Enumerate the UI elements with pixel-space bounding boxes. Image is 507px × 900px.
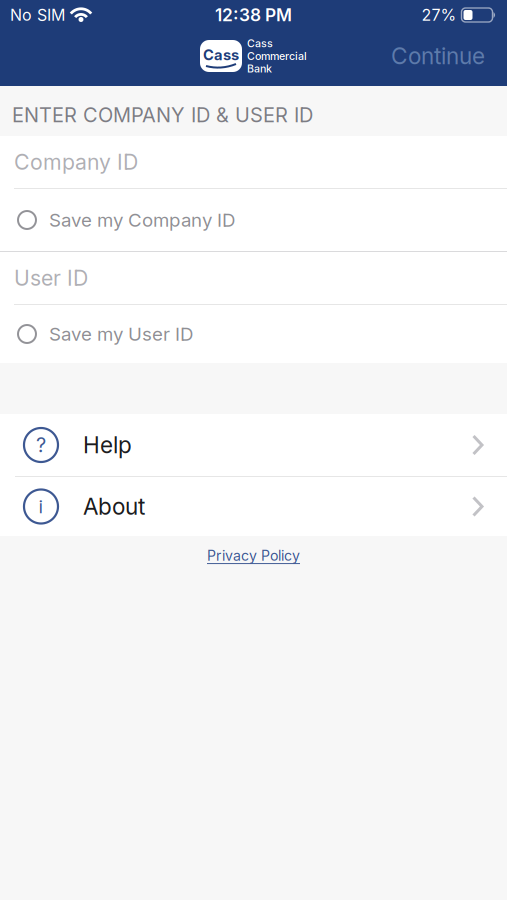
staticText: ENTER COMPANY ID & USER ID <box>12 103 313 127</box>
button[interactable]: Save my Company ID <box>0 189 507 251</box>
staticText: Company ID <box>14 149 138 175</box>
staticText: Continue <box>391 43 485 69</box>
button[interactable]: Company ID text field <box>0 136 507 188</box>
staticText: Cass <box>203 46 239 64</box>
staticText: Help <box>83 432 132 458</box>
staticText: Commercial <box>247 50 307 62</box>
staticText: About <box>83 493 145 520</box>
button[interactable]: i <box>0 477 507 536</box>
staticText: Bank <box>247 62 272 75</box>
staticText: No SIM <box>10 6 65 24</box>
button[interactable]: Continue <box>391 43 507 69</box>
button[interactable]: Privacy Policy <box>207 536 300 564</box>
staticText: i <box>38 495 43 517</box>
staticText: Cass <box>247 37 273 50</box>
staticText: Privacy Policy <box>207 547 300 564</box>
staticText: 12:38 PM <box>215 5 292 25</box>
button[interactable]: User ID text field <box>0 252 507 304</box>
staticText: 27% <box>421 6 456 24</box>
staticText: Save my Company ID <box>49 209 235 231</box>
staticText: ? <box>36 433 46 457</box>
button[interactable]: ? <box>0 414 507 476</box>
staticText: User ID <box>14 265 88 291</box>
staticText: Save my User ID <box>49 323 193 345</box>
button[interactable]: Save my User ID <box>0 305 507 363</box>
